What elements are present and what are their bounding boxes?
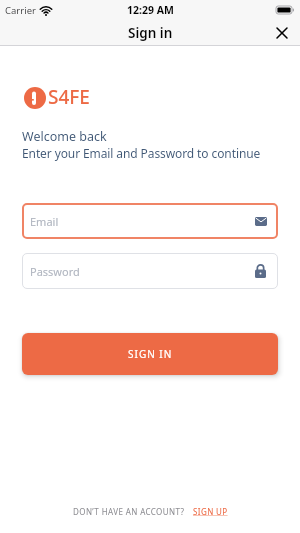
button[interactable]: Password	[22, 253, 278, 289]
staticText: Welcome back	[22, 128, 107, 145]
button[interactable]: SIGN UP	[193, 506, 228, 517]
staticText: Email	[30, 214, 59, 229]
staticText: Enter your Email and Password to continu…	[22, 145, 261, 161]
button[interactable]	[273, 24, 291, 42]
staticText: Carrier	[5, 4, 36, 17]
staticText: Password	[30, 264, 80, 279]
staticText: SIGN IN	[128, 347, 173, 361]
staticText: Sign in	[128, 24, 173, 42]
staticText: 12:29 AM	[127, 3, 174, 17]
button[interactable]: SIGN IN	[22, 333, 278, 375]
button[interactable]: Email	[22, 203, 278, 239]
staticText: S4FE	[48, 84, 90, 106]
staticText: DON’T HAVE AN ACCOUNT?	[73, 506, 185, 517]
